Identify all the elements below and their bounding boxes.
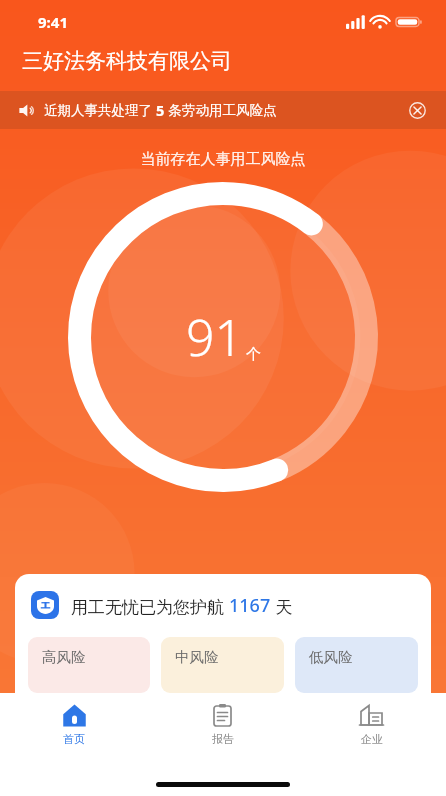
staticText: 用工无忧已为您护航 <box>71 595 229 618</box>
staticText: 1167 <box>229 593 271 618</box>
staticText: 5 <box>156 100 165 120</box>
staticText: 三好法务科技有限公司 <box>22 48 232 74</box>
staticText: 近期人事共处理了 <box>44 101 156 119</box>
staticText: 高风险 <box>42 648 86 666</box>
staticText: 报告 <box>212 732 234 746</box>
staticText: 天 <box>271 595 293 618</box>
button[interactable]: 报告 <box>148 693 297 755</box>
staticText: 91 <box>186 303 244 371</box>
staticText: 中风险 <box>175 648 219 666</box>
button[interactable]: 企业 <box>297 693 446 755</box>
button[interactable]: 首页 <box>0 693 148 755</box>
staticText: 首页 <box>63 732 85 746</box>
staticText: 当前存在人事用工风险点 <box>0 150 446 169</box>
button[interactable]: 用工无忧已为您护航 <box>15 574 431 703</box>
staticText: 低风险 <box>309 648 353 666</box>
staticText: 企业 <box>361 732 383 746</box>
staticText: 条劳动用工风险点 <box>165 101 277 119</box>
button[interactable]: 低风险 <box>295 637 418 693</box>
staticText: 个 <box>246 345 261 364</box>
button[interactable]: 关闭 <box>406 99 428 121</box>
button[interactable]: 高风险 <box>28 637 150 693</box>
button[interactable]: 近期人事共处理了 <box>0 91 446 129</box>
button[interactable]: 中风险 <box>161 637 284 693</box>
staticText: 9:41 <box>38 12 68 32</box>
